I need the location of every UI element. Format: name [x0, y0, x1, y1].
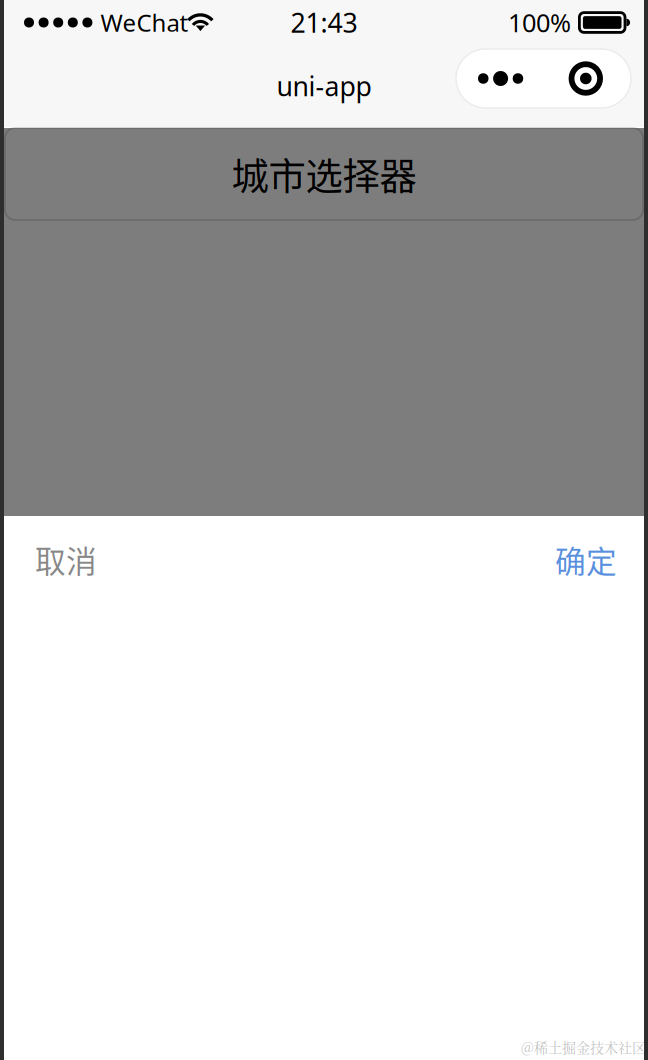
staticText: 取消	[35, 537, 97, 582]
button[interactable]: 确定	[520, 516, 648, 603]
staticText: 100%	[508, 6, 571, 39]
button[interactable]: Mini program menu	[456, 49, 631, 108]
staticText: 确定	[555, 537, 617, 582]
staticText: @稀土掘金技术社区	[521, 1037, 646, 1057]
button[interactable]: 取消	[0, 516, 132, 603]
staticText: WeChat	[100, 7, 188, 38]
staticText: 城市选择器	[231, 147, 416, 201]
button[interactable]: 城市选择器	[5, 128, 643, 220]
staticText: 21:43	[290, 5, 357, 40]
staticText: uni-app	[276, 68, 371, 104]
